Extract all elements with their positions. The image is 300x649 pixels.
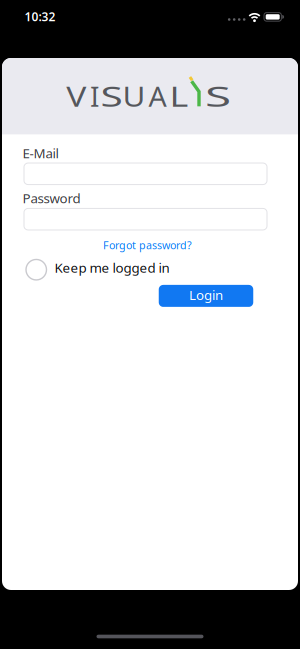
staticText: Login: [189, 286, 223, 304]
button[interactable]: E-Mail: [24, 163, 267, 185]
staticText: S: [104, 77, 119, 115]
staticText: U: [124, 77, 144, 115]
staticText: Forgot password?: [103, 238, 192, 252]
button[interactable]: Password: [24, 208, 267, 230]
button[interactable]: Login: [159, 285, 253, 307]
staticText: E-Mail: [22, 144, 58, 162]
staticText: Password: [22, 189, 80, 207]
staticText: 10:32: [24, 8, 55, 24]
staticText: L: [171, 77, 186, 115]
button[interactable]: Keep me logged in: [26, 259, 169, 280]
staticText: S: [205, 77, 220, 115]
staticText: A: [149, 77, 167, 115]
staticText: I: [90, 77, 99, 115]
staticText: V: [68, 77, 85, 115]
staticText: Keep me logged in: [54, 259, 169, 276]
button[interactable]: Forgot password?: [103, 238, 192, 252]
